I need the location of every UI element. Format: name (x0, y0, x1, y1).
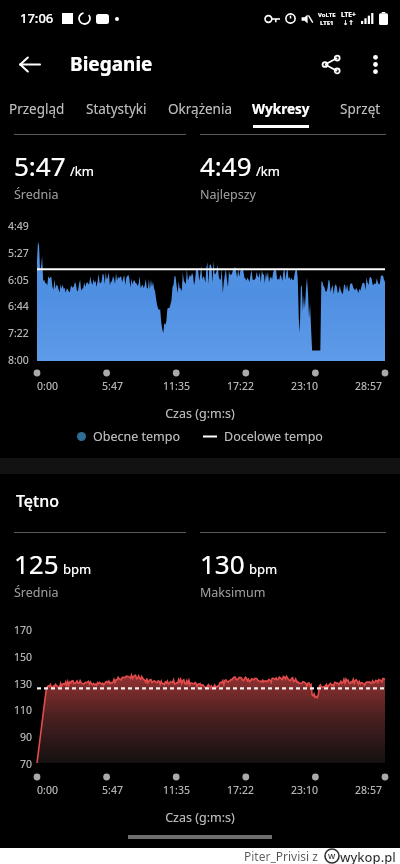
staticText: 28:57 (355, 783, 382, 797)
staticText: 5:47 (102, 783, 123, 797)
staticText: Przegląd (9, 100, 65, 118)
staticText: LTE1 (320, 19, 334, 27)
staticText: Maksimum (200, 584, 266, 601)
staticText: Obecne tempo (93, 428, 181, 445)
staticText: 70 (8, 757, 32, 771)
staticText: VoLTE (318, 11, 336, 19)
button[interactable]: Share (308, 41, 354, 87)
staticText: bpm (249, 560, 278, 578)
staticText: 8:00 (8, 353, 29, 367)
staticText: 5:47 (14, 148, 66, 183)
staticText: 17:06 (20, 9, 54, 27)
staticText: 4:49 (200, 148, 252, 183)
staticText: Wykresy (252, 100, 310, 118)
staticText: 90 (8, 730, 32, 744)
staticText: 23:10 (291, 379, 318, 393)
button[interactable]: Back (6, 41, 52, 87)
staticText: 150 (8, 650, 32, 664)
staticText: 7:22 (8, 326, 29, 340)
staticText: Okrążenia (168, 100, 232, 118)
staticText: LTE+ (341, 10, 356, 19)
staticText: Sprzęt (340, 100, 381, 118)
staticText: Czas (g:m:s) (0, 405, 400, 422)
staticText: Średnia (14, 584, 59, 601)
button[interactable]: Statystyki (74, 92, 158, 130)
button[interactable]: Okrążenia (158, 92, 242, 130)
staticText: Tętno (16, 490, 59, 512)
staticText: 11:35 (163, 783, 190, 797)
staticText: 5:27 (8, 246, 29, 260)
staticText: Docelowe tempo (224, 428, 323, 445)
staticText: Średnia (14, 186, 59, 203)
staticText: 0:00 (37, 379, 58, 393)
staticText: wykop.pl (340, 848, 396, 864)
button[interactable]: Przegląd (0, 92, 74, 130)
staticText: 6:44 (8, 299, 29, 313)
staticText: 6:05 (8, 273, 29, 287)
staticText: 130 (8, 677, 32, 691)
staticText: 23:10 (291, 783, 318, 797)
staticText: 4:49 (8, 219, 29, 233)
button[interactable]: Sprzęt (320, 92, 400, 130)
staticText: 11:35 (163, 379, 190, 393)
staticText: Statystyki (86, 100, 147, 118)
staticText: Najlepszy (200, 186, 256, 203)
staticText: 130 (200, 546, 245, 581)
button[interactable]: More options (354, 41, 396, 87)
staticText: W (328, 851, 336, 861)
staticText: 110 (8, 703, 32, 717)
staticText: /km (256, 162, 280, 180)
staticText: Bieganie (70, 51, 153, 77)
staticText: 17:22 (227, 379, 254, 393)
staticText: 28:57 (355, 379, 382, 393)
staticText: 0:00 (37, 783, 58, 797)
staticText: 17:22 (227, 783, 254, 797)
staticText: Piter_Privisi z (244, 848, 325, 864)
button[interactable]: Wykresy (242, 92, 320, 130)
staticText: 170 (8, 623, 32, 637)
staticText: 125 (14, 546, 59, 581)
staticText: ↓↑ (343, 19, 354, 27)
staticText: bpm (63, 560, 92, 578)
staticText: /km (70, 162, 94, 180)
staticText: 5:47 (102, 379, 123, 393)
staticText: Czas (g:m:s) (0, 809, 400, 826)
